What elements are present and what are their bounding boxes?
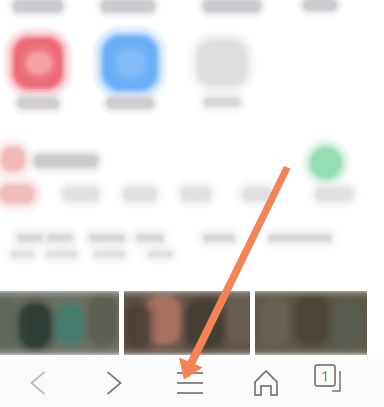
button[interactable]: Forward <box>76 359 152 407</box>
button[interactable]: Back <box>0 359 76 407</box>
staticText: 1 <box>321 366 329 385</box>
button[interactable]: Menu <box>152 359 228 407</box>
button[interactable]: Tabs, 1 open <box>304 359 384 407</box>
button[interactable]: Home <box>228 359 304 407</box>
